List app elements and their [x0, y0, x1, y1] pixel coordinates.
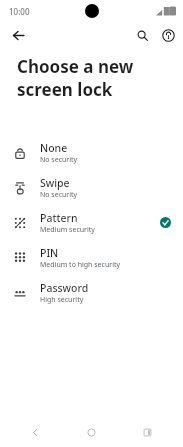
- button[interactable]: Recent apps: [134, 419, 160, 445]
- staticText: PIN: [40, 246, 59, 260]
- button[interactable]: Help: [157, 24, 179, 46]
- staticText: No security: [40, 190, 78, 200]
- button[interactable]: Back: [22, 419, 48, 445]
- staticText: No security: [40, 155, 78, 165]
- staticText: High security: [40, 295, 84, 305]
- button[interactable]: None: [0, 135, 183, 170]
- button[interactable]: Home: [78, 419, 104, 445]
- button[interactable]: Password: [0, 275, 183, 310]
- staticText: screen lock: [17, 78, 113, 101]
- button[interactable]: Back: [6, 23, 30, 47]
- staticText: Pattern: [40, 211, 78, 225]
- button[interactable]: Swipe: [0, 170, 183, 205]
- staticText: None: [40, 141, 68, 155]
- button[interactable]: Pattern: [0, 205, 183, 240]
- staticText: Choose a new: [17, 55, 134, 78]
- staticText: Swipe: [40, 176, 70, 190]
- staticText: Medium to high security: [40, 260, 121, 270]
- button[interactable]: Search: [131, 24, 153, 46]
- button[interactable]: PIN: [0, 240, 183, 275]
- staticText: Medium security: [40, 225, 95, 235]
- staticText: Password: [40, 281, 89, 295]
- staticText: 10:00: [9, 6, 30, 17]
